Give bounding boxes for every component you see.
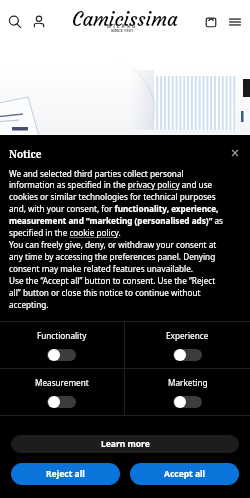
staticText: Learn more	[101, 438, 150, 450]
button[interactable]: Functionality	[0, 322, 124, 368]
button[interactable]: Close	[228, 146, 242, 160]
staticText: Measurement	[35, 377, 89, 388]
staticText: We and selected third parties collect pe…	[9, 168, 223, 311]
button[interactable]: Menu	[224, 11, 246, 33]
staticText: Functionality	[37, 330, 87, 341]
button[interactable]: Cart	[200, 11, 222, 33]
button[interactable]: Learn more	[11, 435, 239, 453]
staticText: Accept all	[164, 468, 206, 480]
staticText: Camicissima	[72, 7, 178, 31]
button[interactable]: Experience	[125, 322, 250, 368]
staticText: Notice	[9, 147, 42, 161]
button[interactable]: Account	[28, 11, 50, 33]
button[interactable]: Search	[4, 11, 26, 33]
staticText: Experience	[166, 330, 209, 341]
button[interactable]: Measurement	[0, 369, 124, 415]
staticText: SINCE 1931	[111, 28, 134, 33]
staticText: Marketing	[168, 377, 208, 388]
button[interactable]: Accept all	[130, 463, 239, 485]
staticText: M I L A N O	[107, 23, 137, 29]
staticText: Reject all	[46, 468, 85, 480]
button[interactable]: Reject all	[11, 463, 120, 485]
button[interactable]: Marketing	[125, 369, 250, 415]
